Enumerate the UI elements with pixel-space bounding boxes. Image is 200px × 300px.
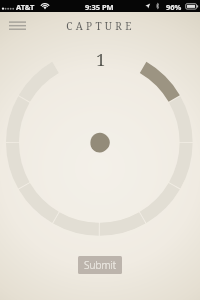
button[interactable]: Submit — [78, 256, 122, 274]
staticText: 9:35 PM — [85, 2, 114, 12]
staticText: Submit — [84, 258, 117, 272]
staticText: 96% — [166, 2, 182, 12]
staticText: 1 — [96, 48, 106, 71]
button[interactable]: Menu — [0, 12, 34, 40]
staticText: AT&T — [16, 2, 35, 12]
staticText: CAPTURE — [66, 19, 135, 33]
